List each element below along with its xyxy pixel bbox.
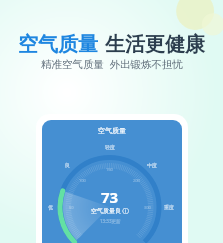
staticText: 300 [144, 205, 151, 210]
staticText: 空气质量良 ⓘ [91, 207, 129, 215]
staticText: 空气质量 [18, 32, 98, 57]
staticText: 中度 [147, 162, 157, 168]
staticText: 空气质量 [98, 126, 126, 135]
staticText: 73 [101, 187, 119, 207]
staticText: 优 [48, 204, 53, 210]
staticText: 50 [69, 205, 74, 210]
staticText: 150 [106, 167, 113, 172]
staticText: 100 [79, 178, 86, 183]
staticText: 精准空气质量 外出锻炼不担忧 [41, 57, 183, 71]
staticText: 13:33更新 [100, 218, 121, 224]
staticText: 良 [65, 162, 70, 168]
staticText: 200 [133, 178, 140, 183]
staticText: 轻度 [105, 144, 115, 150]
staticText: 生活更健康 [105, 32, 205, 57]
staticText: 重度 [164, 204, 174, 210]
